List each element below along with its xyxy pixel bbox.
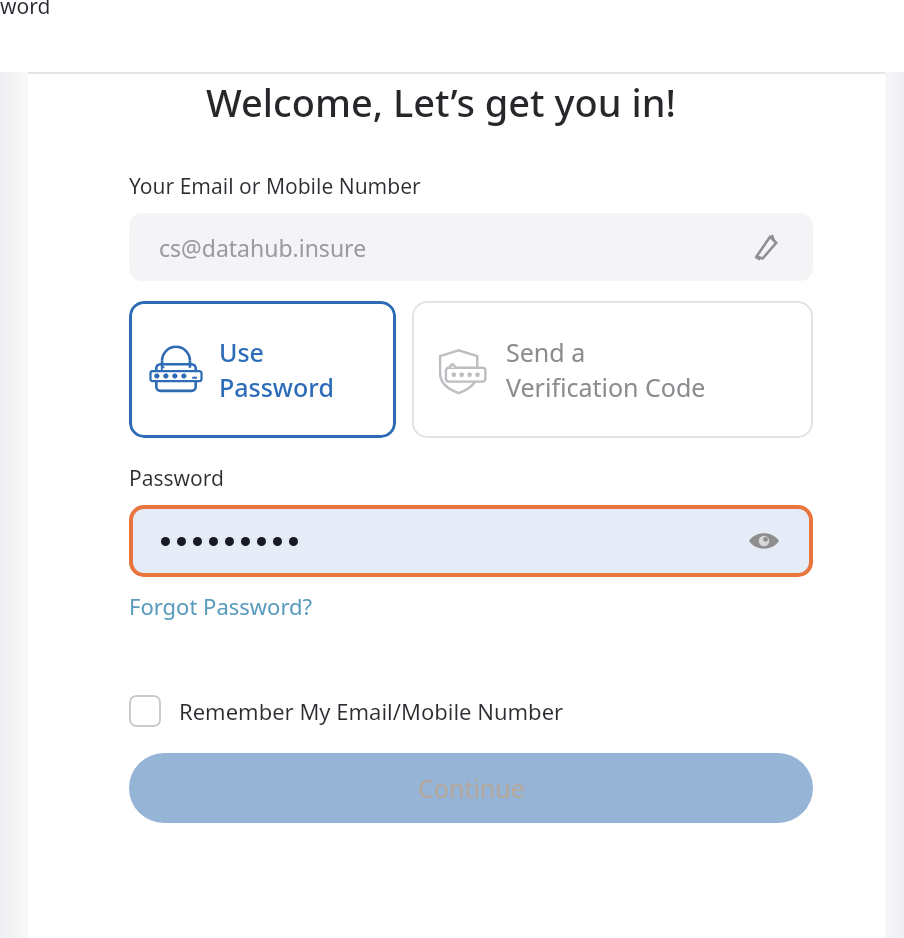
staticText: Password	[129, 464, 224, 493]
staticText: Welcome, Let’s get you in!	[99, 76, 783, 128]
other: Show password	[747, 524, 781, 558]
button[interactable]: Use Password	[129, 301, 396, 438]
staticText: word	[0, 0, 51, 21]
staticText: Continue	[418, 771, 525, 805]
staticText: Send a Verification Code	[506, 335, 706, 405]
staticText: cs@datahub.insure	[159, 232, 367, 263]
button[interactable]: Forgot Password?	[129, 591, 313, 621]
staticText: Use Password	[219, 335, 334, 405]
staticText: Your Email or Mobile Number	[129, 172, 421, 201]
button[interactable]: Show password	[129, 505, 813, 577]
staticText: Forgot Password?	[129, 591, 313, 621]
staticText: Remember My Email/Mobile Number	[179, 696, 564, 726]
button[interactable]: Continue	[129, 753, 813, 823]
button[interactable]: Remember My Email/Mobile Number	[129, 691, 564, 731]
button[interactable]: cs@datahub.insure	[129, 213, 813, 281]
button[interactable]: Send a Verification Code	[412, 301, 813, 438]
other: Edit email	[749, 230, 783, 264]
